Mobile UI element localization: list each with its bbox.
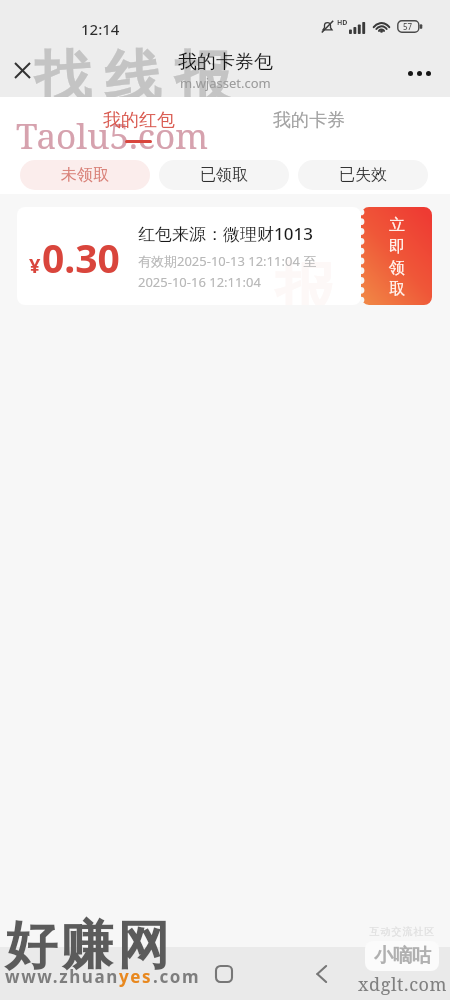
button[interactable]: Close bbox=[9, 57, 35, 83]
staticText: Taolu5.com bbox=[16, 112, 209, 160]
staticText: 已领取 bbox=[200, 165, 248, 185]
staticText: 报 bbox=[275, 253, 335, 305]
staticText: 互动交流社区 bbox=[369, 925, 435, 938]
staticText: 57 bbox=[403, 21, 413, 32]
staticText: 好赚网 bbox=[3, 913, 171, 979]
staticText: xdglt.com bbox=[358, 972, 448, 997]
button[interactable]: 已失效 bbox=[298, 160, 428, 190]
button[interactable]: Back bbox=[304, 957, 338, 991]
staticText: 有效期2025-10-13 12:11:04 至 2025-10-16 12:1… bbox=[138, 252, 317, 291]
staticText: 我的卡券 bbox=[273, 109, 345, 132]
staticText: yes bbox=[119, 965, 153, 988]
staticText: ¥ bbox=[29, 252, 41, 279]
staticText: 未领取 bbox=[61, 165, 109, 185]
button[interactable]: More options bbox=[402, 56, 436, 90]
staticText: www.zhuan bbox=[5, 965, 119, 988]
staticText: 我的卡券包 bbox=[178, 50, 273, 74]
staticText: .com bbox=[153, 965, 201, 988]
button[interactable]: 已领取 bbox=[159, 160, 289, 190]
button[interactable]: 立 即 领 取 bbox=[356, 207, 434, 305]
staticText: 已失效 bbox=[339, 165, 387, 185]
staticText: 找线报 bbox=[28, 42, 238, 114]
button[interactable]: 我的卡券 bbox=[264, 102, 353, 148]
button[interactable]: ¥ bbox=[17, 207, 361, 305]
button[interactable]: 我的红包 bbox=[94, 102, 183, 148]
staticText: 红包来源：微理财1013 bbox=[138, 222, 313, 245]
staticText: m.wjasset.com bbox=[180, 74, 271, 92]
button[interactable]: Home bbox=[207, 957, 241, 991]
staticText: 小嘀咕 bbox=[374, 944, 431, 968]
staticText: 我的红包 bbox=[103, 109, 175, 132]
button[interactable]: 未领取 bbox=[20, 160, 150, 190]
staticText: 12:14 bbox=[81, 19, 120, 39]
staticText: 0.30 bbox=[42, 231, 120, 284]
staticText: HD bbox=[337, 18, 348, 28]
staticText: 立 即 领 取 bbox=[389, 215, 405, 298]
